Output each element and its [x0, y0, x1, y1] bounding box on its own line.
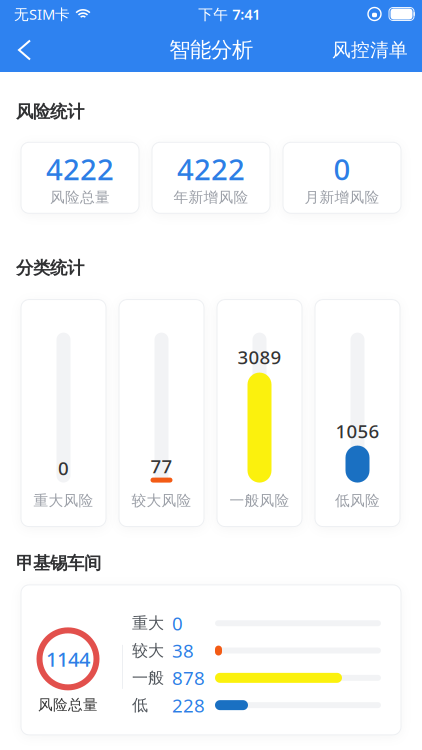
staticText: 重大 [132, 613, 164, 633]
staticText: 智能分析 [169, 37, 253, 63]
staticText: 分类统计 [16, 257, 84, 279]
staticText: 77 [150, 454, 172, 478]
staticText: 一般 [132, 668, 164, 688]
staticText: 风险统计 [16, 101, 84, 122]
staticText: 878 [172, 665, 205, 690]
button[interactable]: 4222 [21, 142, 139, 213]
staticText: 38 [172, 638, 194, 663]
staticText: 无SIM卡 [14, 4, 70, 24]
staticText: 1056 [335, 419, 379, 443]
button[interactable]: 77 [119, 300, 204, 527]
staticText: 风控清单 [332, 38, 408, 61]
staticText: 下午 7:41 [198, 4, 260, 24]
button[interactable] [0, 28, 42, 72]
staticText: 1144 [46, 646, 90, 672]
staticText: 较大风险 [131, 492, 191, 510]
staticText: 低风险 [335, 492, 380, 510]
staticText: 228 [172, 693, 205, 717]
button[interactable]: 0 [283, 142, 401, 213]
staticText: 4222 [177, 149, 245, 188]
button[interactable]: 1144 [21, 585, 401, 735]
button[interactable]: 风控清单 [332, 28, 422, 72]
button[interactable]: 0 [21, 300, 106, 527]
button[interactable]: 3089 [217, 300, 302, 527]
staticText: 月新增风险 [304, 188, 379, 206]
staticText: 年新增风险 [173, 188, 248, 206]
staticText: 3089 [237, 345, 281, 369]
staticText: 4222 [46, 149, 114, 188]
staticText: 较大 [132, 641, 164, 660]
button[interactable]: 4222 [152, 142, 270, 213]
staticText: 重大风险 [33, 492, 93, 510]
staticText: 0 [58, 456, 69, 480]
staticText: 风险总量 [50, 188, 110, 206]
staticText: 甲基锡车间 [16, 553, 101, 574]
staticText: 0 [172, 611, 183, 636]
staticText: 一般风险 [229, 492, 289, 510]
staticText: 0 [333, 149, 350, 188]
staticText: 低 [132, 695, 148, 715]
staticText: 风险总量 [38, 696, 98, 714]
button[interactable]: 1056 [315, 300, 400, 527]
